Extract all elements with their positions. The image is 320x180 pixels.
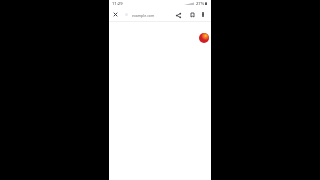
button[interactable]: More options bbox=[198, 9, 209, 20]
button[interactable]: Bookmark bbox=[187, 10, 198, 21]
staticText: 11:29 bbox=[112, 1, 123, 7]
button[interactable]: Share bbox=[173, 9, 184, 20]
staticText: example.com bbox=[132, 13, 155, 18]
button[interactable]: Close bbox=[110, 9, 121, 20]
staticText: 27% bbox=[196, 1, 205, 7]
